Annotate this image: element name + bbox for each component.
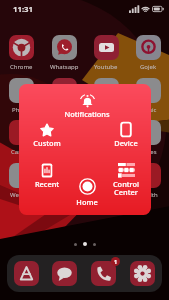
staticText: Weather	[10, 191, 34, 199]
staticText: Health	[139, 191, 158, 199]
staticText: Gojek	[140, 63, 157, 71]
button[interactable]: Control Center	[104, 160, 148, 192]
staticText: 1	[114, 258, 118, 265]
staticText: Wallet	[97, 191, 115, 199]
button[interactable]: App Store	[14, 261, 39, 286]
button[interactable]: Photos	[0, 78, 43, 114]
button[interactable]: Notifications	[60, 91, 114, 122]
staticText: Photos	[12, 106, 32, 114]
button[interactable]: Notes	[127, 120, 169, 156]
staticText: Maps	[98, 106, 114, 114]
button[interactable]: Youtube	[85, 35, 127, 71]
button[interactable]: Mail	[85, 120, 127, 156]
button[interactable]: Gojek	[127, 35, 169, 71]
button[interactable]: Recent	[25, 160, 69, 192]
staticText: Recent	[25, 179, 69, 189]
staticText: Device	[104, 138, 148, 148]
button[interactable]: Chrome	[0, 35, 43, 71]
button[interactable]: Maps	[85, 78, 127, 114]
button[interactable]: Files	[43, 78, 85, 114]
staticText: Notes	[140, 148, 157, 156]
staticText: Music	[140, 106, 157, 114]
button[interactable]: Settings	[130, 261, 155, 286]
staticText: Camera	[11, 148, 33, 156]
staticText: Whatsapp	[50, 63, 79, 71]
button[interactable]: Weather	[0, 163, 43, 199]
staticText: Custom	[25, 138, 69, 148]
button[interactable]: Whatsapp	[43, 35, 85, 71]
staticText: Files	[58, 106, 71, 114]
staticText: Home	[65, 197, 109, 207]
button[interactable]: Health	[127, 163, 169, 199]
staticText: Notifications	[60, 109, 114, 119]
staticText: 11:31	[13, 4, 34, 15]
staticText: Control Center	[104, 179, 148, 197]
button[interactable]: Custom	[25, 120, 69, 151]
button[interactable]: Clock	[43, 120, 85, 156]
button[interactable]: Device	[104, 119, 148, 151]
button[interactable]: Phone	[91, 261, 116, 286]
staticText: Youtube	[94, 63, 118, 71]
button[interactable]: Wallet	[85, 163, 127, 199]
staticText: Chrome	[10, 63, 33, 71]
button[interactable]: Calendar	[43, 163, 85, 199]
button[interactable]: Home	[65, 175, 109, 210]
button[interactable]: Music	[127, 78, 169, 114]
button[interactable]: Camera	[0, 120, 43, 156]
button[interactable]: Messages	[52, 261, 77, 286]
